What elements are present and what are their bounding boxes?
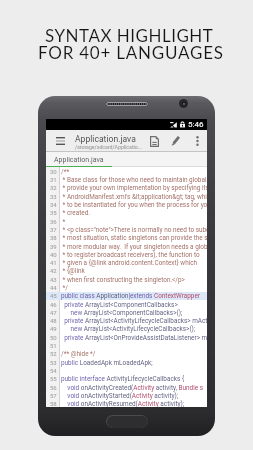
staticText: FOR 40+ LANGUAGES [38,42,224,62]
staticText: /** @hide */ [61,350,96,358]
staticText: 50 [50,334,57,341]
staticText: * AndroidManifest.xml's &lt;application&… [61,193,207,201]
staticText: new ArrayList<ComponentCallbacks>(); [61,309,183,317]
staticText: * when first constructing the singleton.… [61,276,185,284]
staticText: * more modular way. If your singleton ne… [61,243,207,251]
staticText: * provide your own implementation by spe… [61,184,207,192]
staticText: 56 [50,384,57,391]
staticText: * to register broadcast receivers), the … [61,251,207,259]
staticText: 58 [50,400,57,407]
staticText: 35 [50,209,57,216]
staticText: SYNTAX HIGHLIGHT [45,25,214,45]
staticText: * given a {@link android.content.Context… [61,259,207,267]
staticText: 51 [50,342,57,349]
staticText: 40 [50,251,57,258]
staticText: 37 [50,226,57,233]
staticText: new ArrayList<ActivityLifecycleCallbacks… [61,325,196,333]
staticText: * to be instantiated for you when the pr… [61,201,207,209]
staticText: 55 [50,375,57,382]
staticText: 57 [50,392,57,399]
staticText: 32 [50,184,57,191]
staticText: 41 [50,259,57,266]
staticText: private ArrayList<ActivityLifecycleCallb… [61,317,207,325]
staticText: * created. [61,209,91,217]
staticText: 49 [50,325,57,332]
staticText: 39 [50,243,57,250]
staticText: 34 [50,201,57,208]
staticText: * most situation, static singletons can … [61,234,207,242]
staticText: void onActivityResumed(Activity activity… [61,400,185,407]
staticText: 46 [50,301,57,308]
staticText: public LoadedApk mLoadedApk; [61,359,153,367]
staticText: private ArrayList<OnProvideAssistDataLis… [61,334,207,342]
staticText: 53 [50,359,57,366]
staticText: 47 [50,309,57,316]
staticText: 44 [50,284,57,291]
button[interactable]: Application.java [46,152,112,167]
button[interactable]: More options [188,130,207,152]
staticText: 36 [50,218,57,225]
staticText: public class Application|extends Context… [61,292,207,300]
staticText: void onActivityCreated(Activity activity… [61,384,203,392]
staticText: * {@link android.content.Context#getAppl… [61,267,207,275]
staticText: Application.java [75,134,136,144]
staticText: * Base class for those who need to maint… [61,176,207,184]
staticText: 52 [50,350,57,357]
staticText: /storage/sdcard/Applicatio... [75,144,142,150]
staticText: 54 [50,367,57,374]
staticText: * <p class="note">There is normally no n… [61,226,207,234]
staticText: void onActivityStarted(Activity activity… [61,392,179,400]
staticText: 33 [50,193,57,200]
staticText: * [61,218,66,226]
staticText: 5:46 [188,120,204,129]
staticText: 48 [50,317,57,324]
staticText: private ArrayList<ComponentCallbacks> mC… [61,301,207,309]
button[interactable]: Edit [166,130,185,152]
button[interactable]: Navigation menu [50,130,70,152]
staticText: */ [61,284,68,292]
staticText: 43 [50,276,57,283]
staticText: public interface ActivityLifecycleCallba… [61,375,185,383]
staticText: 42 [50,267,57,274]
staticText: 45 [50,292,57,299]
staticText: 38 [50,234,57,241]
staticText: 30 [50,168,57,175]
staticText: 31 [50,176,57,183]
button[interactable]: New file [145,130,164,152]
staticText: Application.java [54,156,104,164]
staticText: /** [61,168,70,176]
